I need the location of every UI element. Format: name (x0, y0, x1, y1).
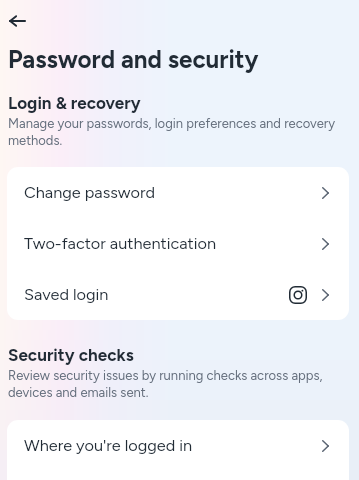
staticText: Two-factor authentication (24, 234, 217, 254)
staticText: Change password (24, 183, 155, 203)
staticText: Password and security (8, 45, 259, 74)
button[interactable]: Change password (7, 167, 349, 218)
button[interactable]: Where you're logged in (7, 420, 349, 471)
button[interactable]: Two-factor authentication (7, 218, 349, 269)
button[interactable]: Saved login (7, 269, 349, 320)
staticText: Login & recovery (8, 93, 141, 114)
staticText: Security checks (8, 345, 134, 366)
staticText: Review security issues by running checks… (8, 368, 343, 400)
staticText: Saved login (24, 285, 109, 305)
button[interactable]: Back (1, 5, 33, 37)
staticText: Where you're logged in (24, 436, 193, 456)
staticText: Manage your passwords, login preferences… (8, 116, 343, 148)
